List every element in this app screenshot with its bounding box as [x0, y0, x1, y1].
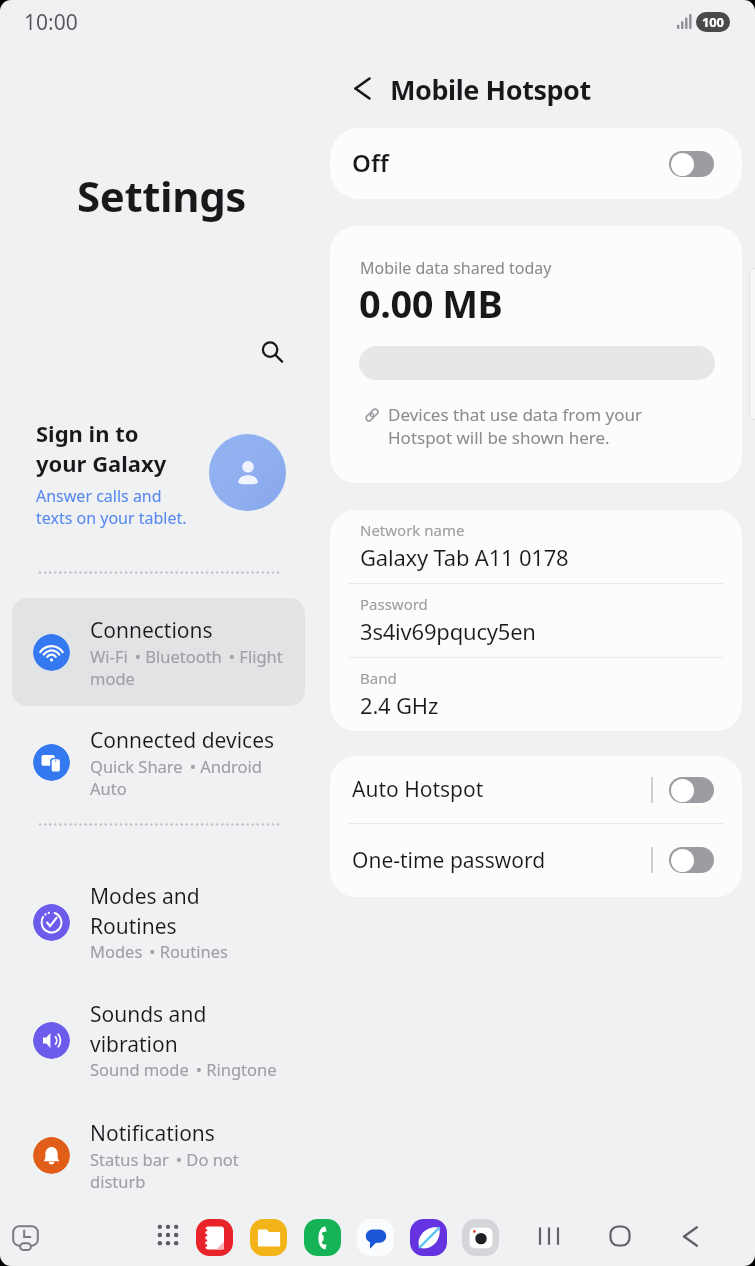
staticText: mode: [90, 667, 135, 689]
button[interactable]: Connected devices: [12, 711, 305, 813]
staticText: Settings: [77, 167, 246, 224]
staticText: Devices that use data from your Hotspot …: [388, 403, 643, 449]
button[interactable]: Modes and Routines: [12, 871, 305, 973]
button[interactable]: Samsung Notes: [196, 1219, 233, 1256]
button[interactable]: Mobile Hotspot, off: [669, 151, 714, 177]
button[interactable]: Search: [250, 330, 294, 374]
staticText: Auto: [90, 777, 127, 799]
button[interactable]: Messages: [357, 1219, 394, 1256]
button[interactable]: Network name: [330, 510, 742, 584]
staticText: Galaxy Tab A11 0178: [360, 542, 569, 572]
staticText: Quick Share • Android: [90, 755, 262, 777]
button[interactable]: Sounds and vibration: [12, 989, 305, 1091]
button[interactable]: Home: [598, 1214, 642, 1258]
button[interactable]: Back: [668, 1214, 712, 1258]
button[interactable]: All apps: [149, 1216, 187, 1254]
button[interactable]: Auto Hotspot, off: [669, 777, 714, 803]
button[interactable]: Band: [330, 658, 742, 731]
button[interactable]: Off: [330, 128, 742, 199]
staticText: Mobile data shared today: [360, 257, 552, 279]
staticText: 0.00 MB: [359, 277, 503, 329]
staticText: Connected devices: [90, 726, 275, 755]
button[interactable]: Screen time: [3, 1216, 47, 1260]
staticText: Modes and Routines: [90, 882, 200, 940]
staticText: Modes • Routines: [90, 940, 228, 962]
button[interactable]: Connections: [12, 598, 305, 706]
staticText: disturb: [90, 1170, 146, 1192]
button[interactable]: Recents: [527, 1214, 571, 1258]
button[interactable]: Internet: [410, 1219, 447, 1256]
button[interactable]: My Files: [250, 1219, 287, 1256]
staticText: Connections: [90, 616, 213, 645]
staticText: Band: [360, 668, 397, 688]
staticText: Auto Hotspot: [352, 775, 651, 804]
staticText: One-time password: [352, 846, 651, 875]
staticText: 2.4 GHz: [360, 690, 439, 720]
staticText: Network name: [360, 520, 465, 540]
staticText: 10:00: [24, 8, 78, 37]
staticText: Sounds and vibration: [90, 1000, 207, 1058]
staticText: Sign in to your Galaxy: [36, 418, 167, 479]
button[interactable]: Auto Hotspot: [330, 756, 742, 823]
staticText: Sound mode • Ringtone: [90, 1058, 277, 1080]
staticText: Answer calls and texts on your tablet.: [36, 485, 187, 529]
staticText: Password: [360, 594, 428, 614]
button[interactable]: Password: [330, 584, 742, 658]
button[interactable]: One-time password, off: [669, 847, 714, 873]
staticText: Status bar • Do not: [90, 1148, 239, 1170]
staticText: Notifications: [90, 1119, 215, 1148]
button[interactable]: Notifications: [12, 1104, 305, 1206]
staticText: 100: [702, 13, 724, 31]
button[interactable]: One-time password: [330, 823, 742, 897]
button[interactable]: Camera: [462, 1219, 499, 1256]
staticText: Off: [352, 146, 669, 179]
staticText: Wi-Fi • Bluetooth • Flight: [90, 645, 283, 667]
staticText: Mobile Hotspot: [390, 71, 591, 108]
button[interactable]: Back: [340, 66, 384, 110]
staticText: 3s4iv69pqucy5en: [360, 616, 536, 646]
button[interactable]: Sign in to your Galaxy: [22, 413, 308, 531]
button[interactable]: Phone: [304, 1219, 341, 1256]
